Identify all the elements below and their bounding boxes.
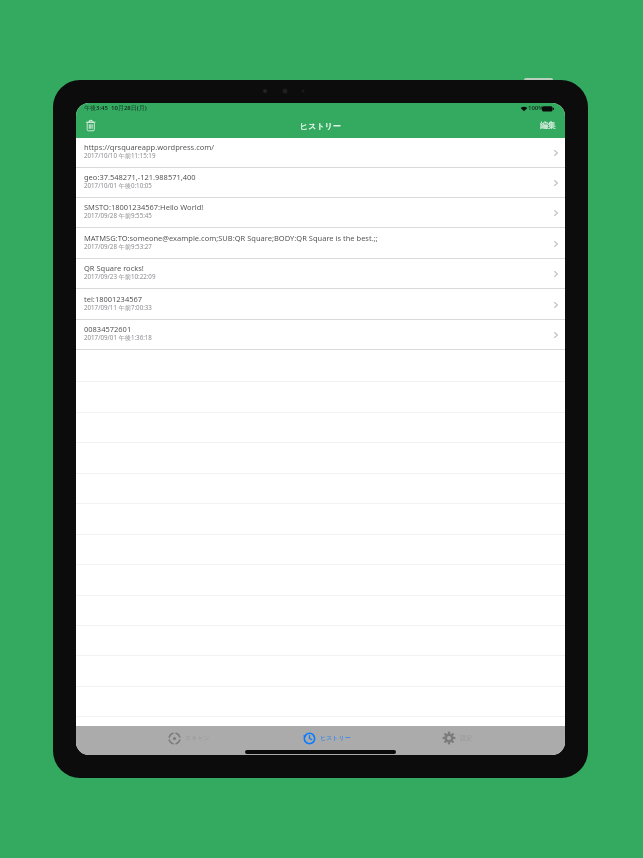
staticText: 設定	[460, 734, 472, 742]
button[interactable]: https://qrsquareapp.wordpress.com/	[76, 138, 565, 168]
staticText: 2017/09/01 午後1:36:18	[84, 333, 152, 341]
staticText: 2017/10/10 午前11:15:19	[84, 151, 156, 159]
button[interactable]: ヒストリー	[303, 730, 351, 746]
staticText: 午後3:45 10月28日(月)	[84, 104, 147, 112]
button[interactable]: MATMSG:TO:someone@example.com;SUB:QR Squ…	[76, 229, 565, 259]
staticText: MATMSG:TO:someone@example.com;SUB:QR Squ…	[84, 233, 544, 243]
button[interactable]: SMSTO:18001234567:Hello World!	[76, 198, 565, 228]
button[interactable]: 00834572601	[76, 320, 565, 350]
button[interactable]: QR Square rocks!	[76, 259, 565, 289]
staticText: geo:37.548271,-121.988571,400	[84, 172, 544, 182]
button[interactable]: 設定	[442, 730, 472, 746]
staticText: 00834572601	[84, 324, 544, 334]
staticText: 2017/09/11 午前7:00:33	[84, 303, 152, 311]
staticText: 編集	[540, 120, 556, 130]
button[interactable]: スキャン	[168, 730, 210, 746]
staticText: 2017/10/01 午後0:10:05	[84, 181, 152, 189]
staticText: ヒストリー	[300, 121, 341, 131]
staticText: 100%	[528, 104, 544, 112]
staticText: ヒストリー	[320, 734, 351, 742]
staticText: スキャン	[185, 734, 210, 742]
staticText: tel:18001234567	[84, 294, 544, 304]
button[interactable]	[82, 116, 99, 134]
staticText: QR Square rocks!	[84, 263, 544, 273]
button[interactable]: geo:37.548271,-121.988571,400	[76, 168, 565, 198]
staticText: https://qrsquareapp.wordpress.com/	[84, 142, 544, 152]
staticText: SMSTO:18001234567:Hello World!	[84, 202, 544, 212]
button[interactable]: tel:18001234567	[76, 290, 565, 320]
staticText: 2017/09/23 午前10:22:09	[84, 272, 156, 280]
staticText: 2017/09/28 午前9:53:27	[84, 242, 152, 250]
staticText: 2017/09/28 午前9:55:45	[84, 211, 152, 219]
button[interactable]: 編集	[522, 116, 556, 134]
